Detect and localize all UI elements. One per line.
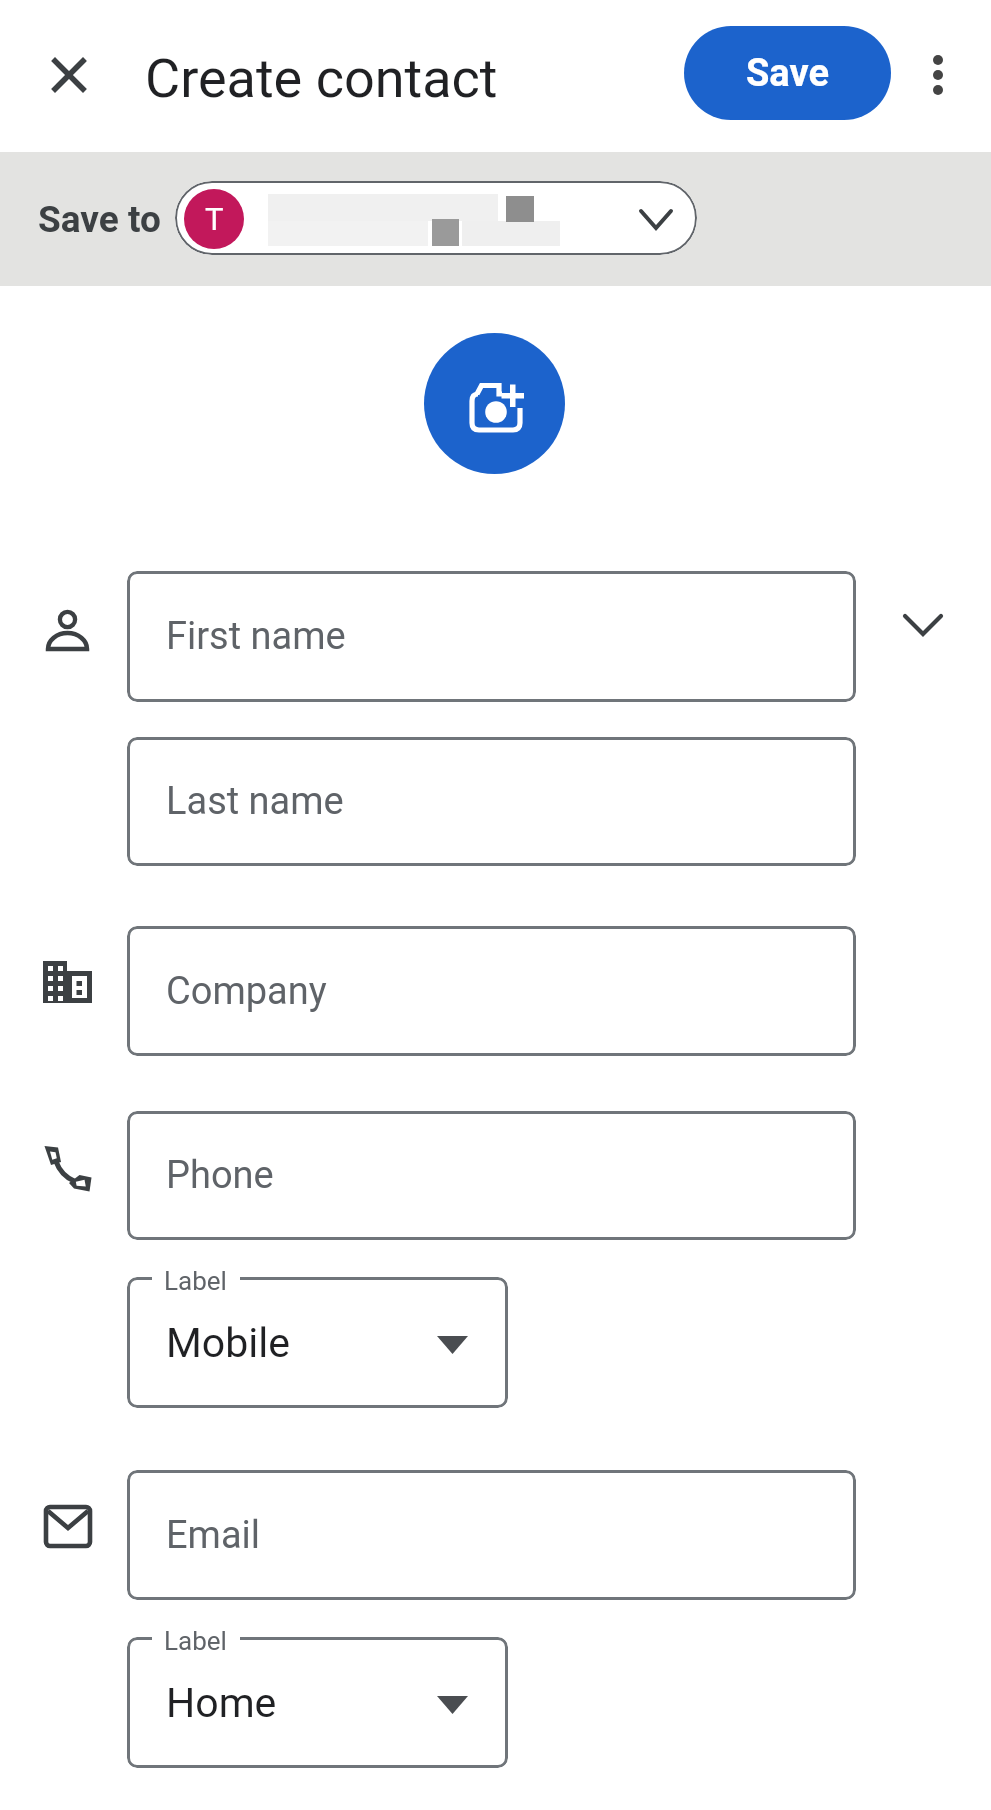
button[interactable] [897,595,953,651]
button[interactable]: Home [127,1637,508,1768]
staticText: Label [164,1626,227,1656]
button[interactable]: Email [127,1470,856,1600]
staticText: Home [166,1679,277,1727]
button[interactable] [424,333,565,474]
staticText: Mobile [166,1319,290,1367]
staticText: Email [166,1513,261,1558]
staticText: Phone [166,1153,274,1198]
staticText: Save to [38,198,161,241]
button[interactable] [175,181,697,255]
staticText: Save [746,51,829,96]
staticText: T [205,201,224,237]
button[interactable] [910,45,968,103]
button[interactable]: First name [127,571,856,702]
staticText: Create contact [145,47,498,110]
staticText: Company [166,969,327,1014]
staticText: Label [164,1266,227,1296]
button[interactable]: Phone [127,1111,856,1240]
button[interactable]: Save [684,26,891,120]
button[interactable]: Mobile [127,1277,508,1408]
staticText: Last name [166,779,344,824]
button[interactable] [40,46,96,102]
button[interactable]: Company [127,926,856,1056]
button[interactable]: Last name [127,737,856,866]
staticText: First name [166,614,346,659]
